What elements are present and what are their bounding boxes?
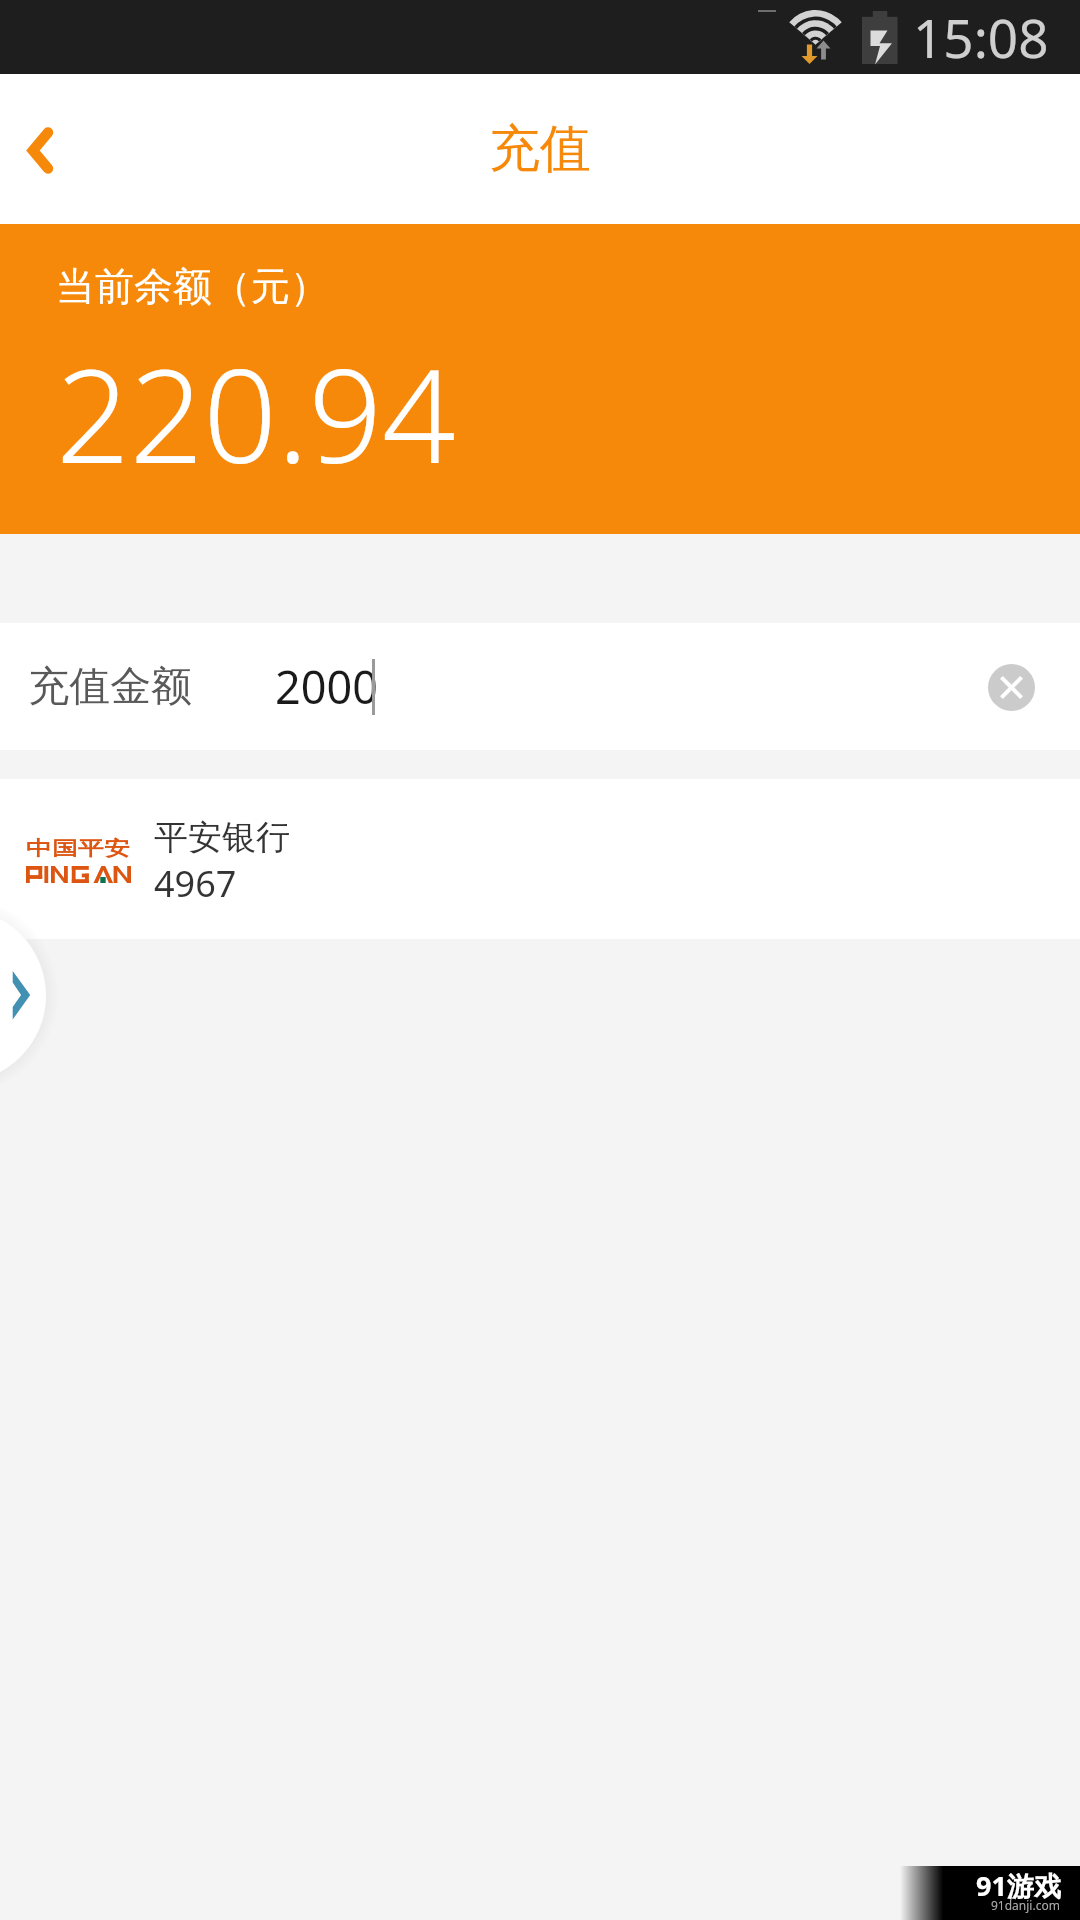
button[interactable]: Next [0, 909, 46, 1082]
staticText: 91danji.com [991, 1897, 1060, 1913]
staticText: 平安银行 [154, 816, 290, 859]
staticText: 15:08 [913, 1, 1049, 73]
staticText: 充值金额 [28, 661, 192, 713]
button[interactable]: Back [0, 74, 100, 224]
button[interactable]: 中国平安 [0, 779, 1080, 939]
staticText: 4967 [154, 859, 237, 908]
staticText: 220.94 [56, 325, 456, 501]
staticText: 当前余额（元） [56, 262, 329, 311]
staticText: 充值 [489, 117, 591, 181]
button[interactable]: Clear [963, 639, 1059, 735]
staticText: 2000 [275, 656, 378, 717]
staticText: 91游戏 [976, 1867, 1061, 1904]
staticText: 中国平安 [26, 836, 130, 861]
button[interactable]: 充值金额 [0, 623, 1080, 750]
